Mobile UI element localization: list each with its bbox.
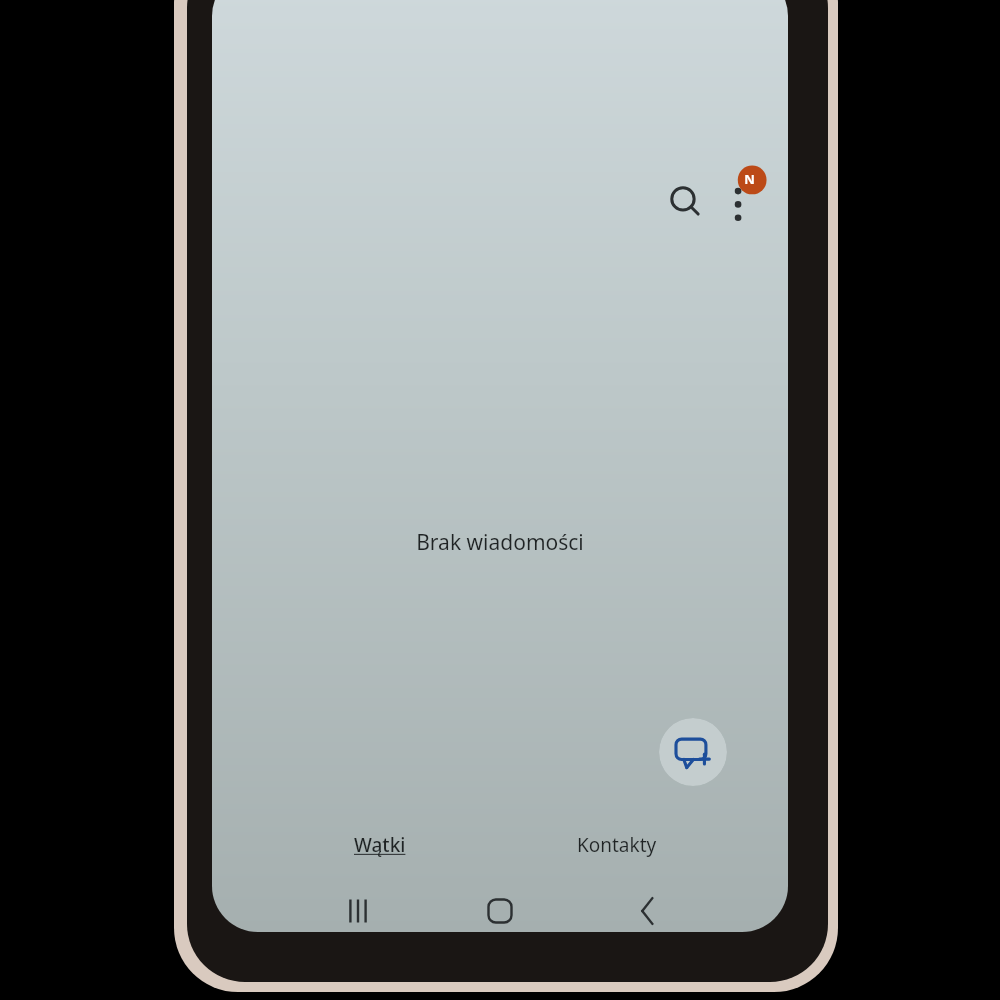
button[interactable]: Kontakty [537,822,697,868]
staticText: Wątki [354,832,406,858]
button[interactable]: Start new conversation [659,718,727,786]
button[interactable]: Home [462,888,538,934]
button[interactable]: More options [716,158,780,230]
button[interactable]: Back [606,888,682,934]
staticText: N [744,170,755,188]
button[interactable]: Wątki [300,822,460,868]
staticText: Brak wiadomości [416,528,584,557]
staticText: Kontakty [577,832,657,858]
button[interactable]: Search [658,176,710,228]
button[interactable]: Recent apps [320,888,396,934]
